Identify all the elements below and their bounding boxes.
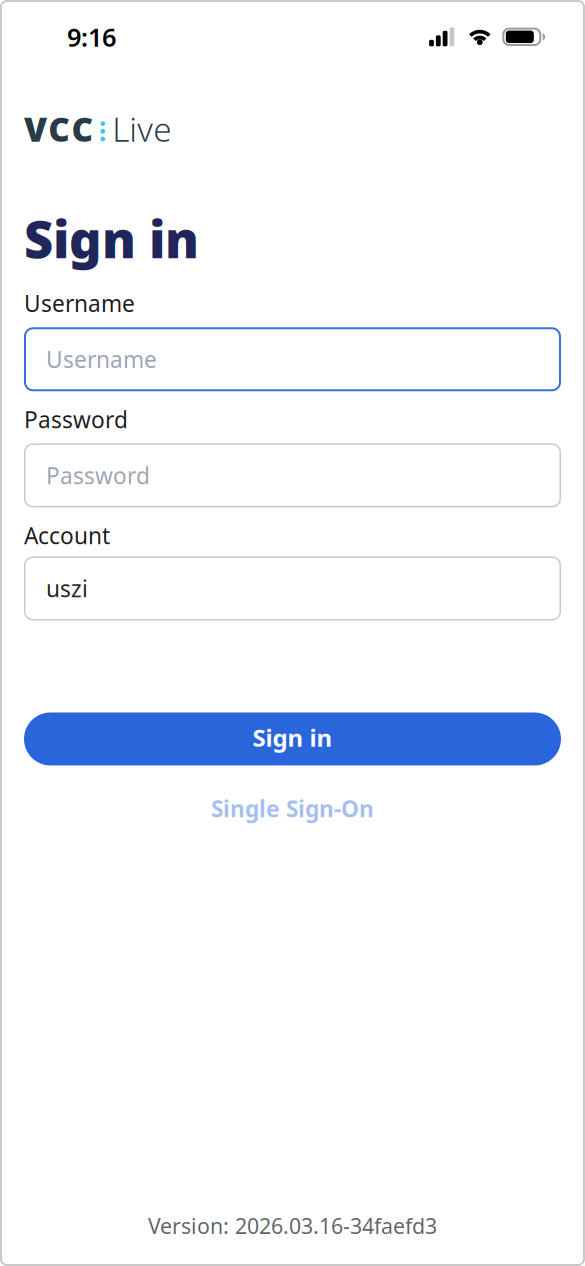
- staticText: C: [48, 107, 70, 151]
- staticText: Password: [46, 460, 150, 490]
- staticText: Sign in: [24, 205, 199, 272]
- button[interactable]: Username: [24, 327, 561, 391]
- staticText: uszi: [46, 573, 88, 603]
- staticText: Username: [24, 288, 135, 318]
- staticText: 9:16: [67, 20, 116, 54]
- button[interactable]: uszi: [24, 556, 561, 620]
- button[interactable]: Single Sign-On: [0, 793, 585, 824]
- staticText: Live: [112, 107, 171, 151]
- staticText: Version: 2026.03.16-34faefd3: [148, 1212, 437, 1240]
- button[interactable]: Password: [24, 443, 561, 507]
- staticText: C: [71, 107, 93, 151]
- staticText: Account: [24, 520, 110, 550]
- staticText: Single Sign-On: [211, 793, 374, 824]
- staticText: V: [24, 107, 47, 151]
- button[interactable]: Sign in: [24, 712, 561, 765]
- staticText: Sign in: [252, 722, 332, 753]
- staticText: Password: [24, 404, 128, 434]
- staticText: Username: [46, 344, 157, 374]
